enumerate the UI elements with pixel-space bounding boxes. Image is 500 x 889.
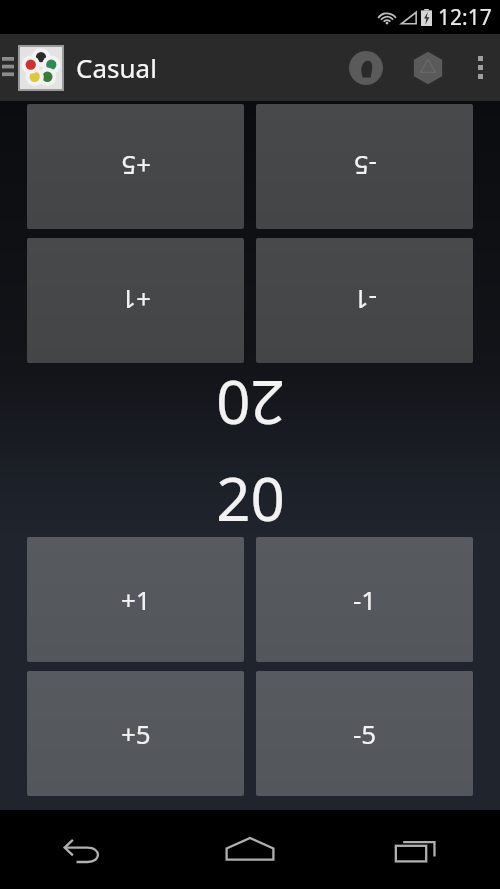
staticText: +1 [121, 582, 151, 617]
button[interactable]: Home [166, 810, 333, 889]
button[interactable]: +5 [27, 104, 244, 229]
staticText: +5 [121, 716, 151, 751]
staticText: 12:17 [438, 3, 492, 32]
staticText: Casual [76, 50, 157, 85]
staticText: +1 [121, 283, 151, 318]
staticText: -1 [353, 582, 377, 617]
button[interactable]: -1 [256, 238, 473, 363]
staticText: 20 [216, 363, 285, 445]
button[interactable]: +5 [27, 671, 244, 796]
button[interactable]: Player profile [338, 40, 394, 96]
button[interactable]: Recent apps [333, 810, 500, 889]
button[interactable]: -5 [256, 671, 473, 796]
button[interactable]: 20 [0, 457, 500, 537]
button[interactable]: More options [460, 34, 500, 101]
staticText: +5 [121, 149, 151, 184]
button[interactable]: Dice roller [400, 40, 456, 96]
button[interactable]: Back [0, 810, 166, 889]
staticText: -5 [353, 149, 377, 184]
staticText: -1 [353, 283, 377, 318]
button[interactable]: -5 [256, 104, 473, 229]
button[interactable]: -1 [256, 537, 473, 662]
button[interactable]: +1 [27, 537, 244, 662]
staticText: -5 [353, 716, 377, 751]
button[interactable]: Navigation drawer [0, 34, 16, 101]
button[interactable]: 20 [0, 363, 500, 445]
button[interactable]: +1 [27, 238, 244, 363]
staticText: 20 [216, 457, 285, 537]
